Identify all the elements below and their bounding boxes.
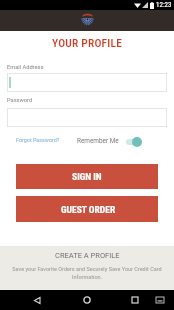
staticText: Password — [7, 97, 33, 104]
staticText: Remember Me — [77, 137, 119, 145]
button[interactable]: Keyboard — [149, 290, 171, 310]
button[interactable]: Back — [19, 290, 55, 310]
staticText: GUEST ORDER — [61, 204, 116, 215]
button[interactable]: Recents — [117, 290, 153, 310]
button[interactable] — [7, 73, 167, 92]
button[interactable] — [7, 108, 167, 127]
button[interactable]: GUEST ORDER — [16, 196, 158, 222]
staticText: Forgot Password? — [16, 137, 60, 143]
staticText: Save your Favorite Orders and Securely S… — [4, 266, 170, 281]
staticText: Email Address — [7, 64, 44, 71]
button[interactable]: Forgot Password? — [16, 137, 60, 143]
staticText: SIGN IN — [72, 171, 102, 182]
staticText: CREATE A PROFILE — [55, 251, 120, 260]
staticText: YOUR PROFILE — [0, 36, 174, 49]
button[interactable]: SIGN IN — [16, 164, 158, 189]
button[interactable]: Remember Me — [77, 135, 141, 146]
button[interactable]: Home — [69, 290, 105, 310]
staticText: 12:23 — [156, 1, 172, 9]
